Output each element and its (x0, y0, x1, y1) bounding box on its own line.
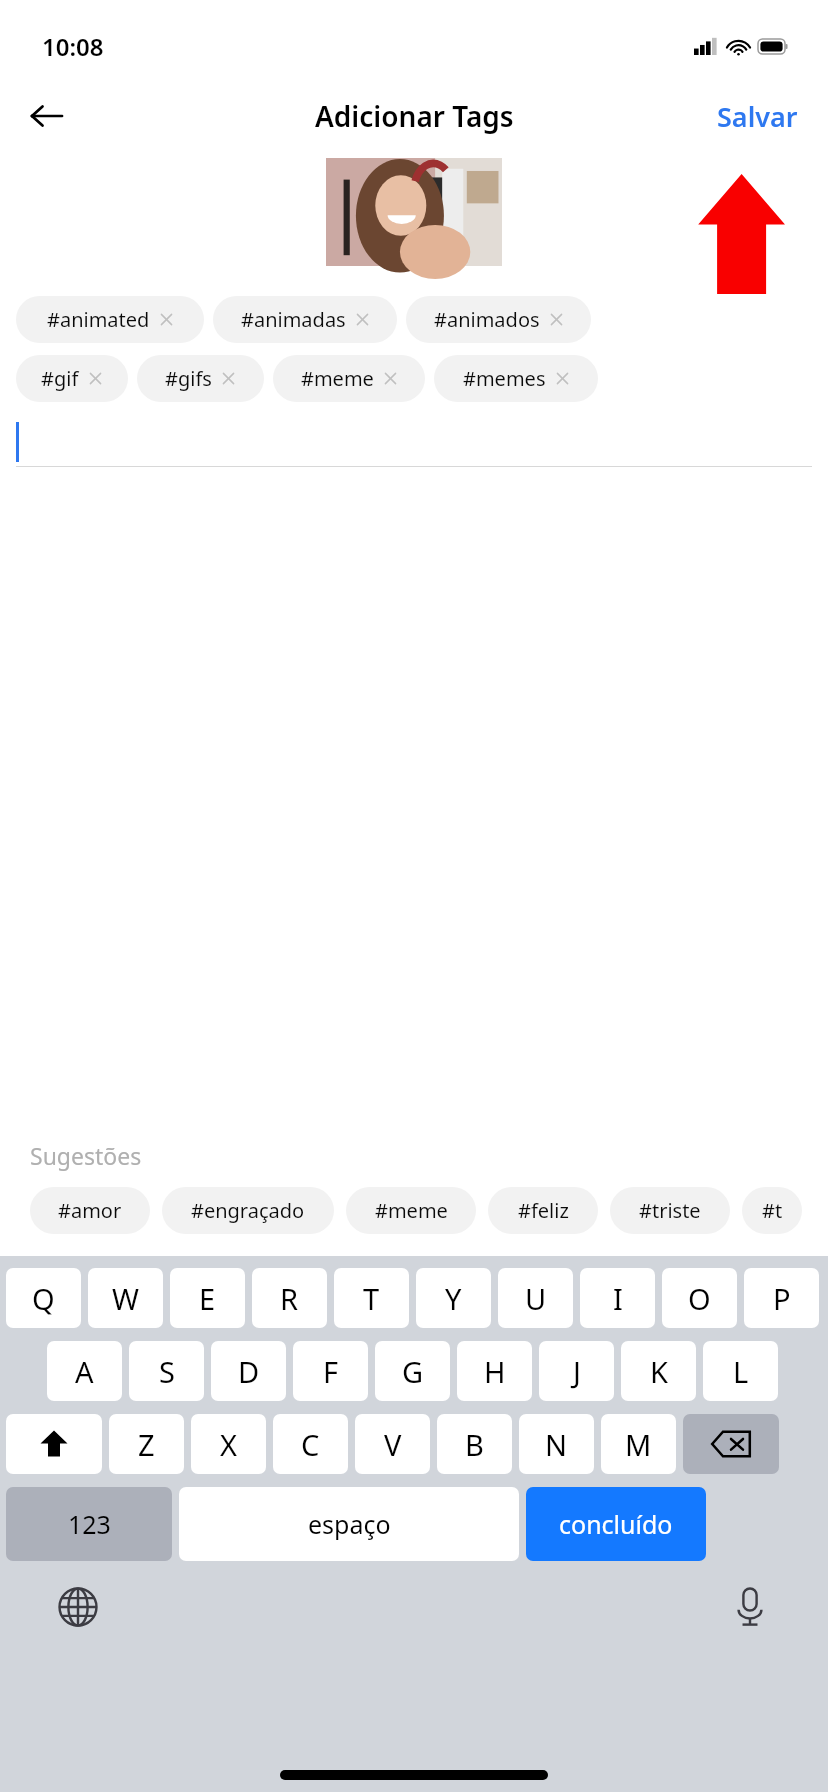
staticText: Y (445, 1279, 462, 1318)
button[interactable]: Apagar (683, 1414, 779, 1474)
button[interactable]: 123 (6, 1487, 172, 1561)
staticText: espaço (308, 1507, 391, 1541)
staticText: G (402, 1352, 424, 1391)
button[interactable]: Ditado por voz (720, 1577, 780, 1637)
staticText: #t (762, 1197, 783, 1224)
button[interactable]: P (744, 1268, 819, 1328)
staticText: #animados (434, 306, 540, 333)
button[interactable]: Voltar (18, 87, 76, 145)
staticText: E (199, 1279, 216, 1318)
button[interactable]: Imagem selecionada (326, 158, 502, 266)
button[interactable]: Z (109, 1414, 184, 1474)
staticText: #meme (301, 365, 374, 392)
staticText: 123 (68, 1507, 111, 1541)
staticText: A (75, 1352, 94, 1391)
button[interactable]: Mudar idioma (48, 1577, 108, 1637)
button[interactable]: Q (6, 1268, 81, 1328)
button[interactable]: V (355, 1414, 430, 1474)
button[interactable]: #gif (16, 355, 128, 402)
button[interactable]: Shift (6, 1414, 102, 1474)
button[interactable]: R (252, 1268, 327, 1328)
staticText: U (525, 1279, 547, 1318)
staticText: #memes (463, 365, 546, 392)
button[interactable]: G (375, 1341, 450, 1401)
button[interactable]: D (211, 1341, 286, 1401)
button[interactable]: E (170, 1268, 245, 1328)
staticText: #amor (58, 1197, 122, 1224)
staticText: P (773, 1279, 791, 1318)
button[interactable]: A (47, 1341, 122, 1401)
button[interactable]: #meme (346, 1187, 476, 1234)
button[interactable]: Salvar (717, 98, 798, 135)
staticText: J (573, 1352, 581, 1391)
staticText: #triste (639, 1197, 701, 1224)
staticText: X (220, 1425, 237, 1464)
staticText: Adicionar Tags (315, 97, 514, 135)
button[interactable]: J (539, 1341, 614, 1401)
staticText: #meme (375, 1197, 448, 1224)
staticText: #animated (47, 306, 150, 333)
button[interactable]: X (191, 1414, 266, 1474)
staticText: #gif (41, 365, 79, 392)
button[interactable]: #t (742, 1187, 802, 1234)
button[interactable]: T (334, 1268, 409, 1328)
staticText: K (650, 1352, 668, 1391)
staticText: W (112, 1279, 139, 1318)
button[interactable]: F (293, 1341, 368, 1401)
staticText: #gifs (165, 365, 212, 392)
staticText: concluído (559, 1507, 673, 1541)
button[interactable]: L (703, 1341, 778, 1401)
staticText: #feliz (518, 1197, 569, 1224)
staticText: S (159, 1352, 175, 1391)
button[interactable]: S (129, 1341, 204, 1401)
button[interactable]: N (519, 1414, 594, 1474)
button[interactable]: #meme (273, 355, 425, 402)
button[interactable]: C (273, 1414, 348, 1474)
button[interactable]: H (457, 1341, 532, 1401)
staticText: R (280, 1279, 299, 1318)
button[interactable]: B (437, 1414, 512, 1474)
staticText: Z (138, 1425, 155, 1464)
button[interactable]: espaço (179, 1487, 519, 1561)
button[interactable]: Y (416, 1268, 491, 1328)
staticText: #engraçado (191, 1197, 305, 1224)
staticText: L (733, 1352, 749, 1391)
staticText: Q (32, 1279, 55, 1318)
button[interactable]: M (601, 1414, 676, 1474)
button[interactable]: #animadas (213, 296, 397, 343)
button[interactable]: #feliz (488, 1187, 598, 1234)
button[interactable]: U (498, 1268, 573, 1328)
button[interactable]: K (621, 1341, 696, 1401)
staticText: M (625, 1425, 652, 1464)
staticText: V (384, 1425, 402, 1464)
button[interactable]: #animados (406, 296, 591, 343)
staticText: H (484, 1352, 506, 1391)
staticText: Sugestões (30, 1140, 142, 1171)
button[interactable]: #gifs (137, 355, 264, 402)
staticText: D (238, 1352, 260, 1391)
button[interactable]: O (662, 1268, 737, 1328)
button[interactable]: #amor (30, 1187, 150, 1234)
staticText: Salvar (717, 98, 798, 135)
staticText: T (363, 1279, 380, 1318)
staticText: #animadas (241, 306, 346, 333)
button[interactable]: #animated (16, 296, 204, 343)
staticText: N (545, 1425, 568, 1464)
staticText: F (323, 1352, 339, 1391)
button[interactable]: I (580, 1268, 655, 1328)
staticText: O (688, 1279, 711, 1318)
staticText: B (465, 1425, 484, 1464)
staticText: I (613, 1279, 623, 1318)
button[interactable]: W (88, 1268, 163, 1328)
button[interactable]: #memes (434, 355, 598, 402)
button[interactable]: #engraçado (162, 1187, 334, 1234)
button[interactable]: #triste (610, 1187, 730, 1234)
button[interactable]: concluído (526, 1487, 706, 1561)
staticText: 10:08 (42, 30, 104, 63)
staticText: C (301, 1425, 320, 1464)
